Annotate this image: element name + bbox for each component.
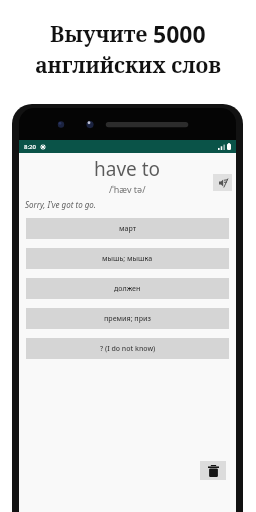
staticText: 8:20	[24, 143, 36, 151]
staticText: премия; приз	[104, 314, 151, 324]
staticText: have to	[94, 156, 161, 182]
staticText: /ˈhæv tə/	[109, 183, 146, 195]
staticText: 5000	[153, 18, 206, 49]
button[interactable]: ? (I do not know)	[26, 338, 229, 359]
button[interactable]: Mute pronunciation	[213, 174, 232, 191]
staticText: английских слов	[35, 51, 221, 80]
staticText: ? (I do not know)	[100, 344, 156, 354]
button[interactable]: мышь; мышка	[26, 248, 229, 269]
staticText: Выучите	[50, 20, 153, 49]
button[interactable]: Delete	[200, 461, 226, 480]
staticText: март	[119, 224, 137, 234]
staticText: мышь; мышка	[102, 254, 153, 264]
button[interactable]: должен	[26, 278, 229, 299]
button[interactable]: премия; приз	[26, 308, 229, 329]
staticText: должен	[114, 284, 141, 294]
button[interactable]: март	[26, 218, 229, 239]
staticText: Sorry, I've got to go.	[25, 199, 236, 210]
